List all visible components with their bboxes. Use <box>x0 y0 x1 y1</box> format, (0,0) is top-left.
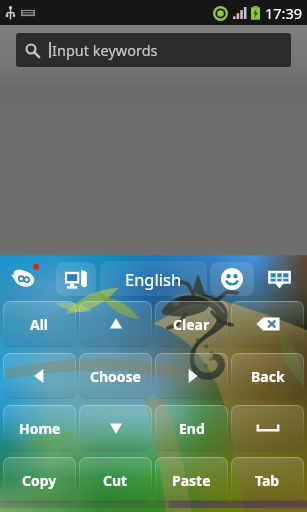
staticText: Paste <box>172 471 211 490</box>
button[interactable]: Keyboard <box>257 256 301 301</box>
staticText: Clear <box>173 315 210 334</box>
button[interactable]: Cut <box>79 457 152 503</box>
staticText: English <box>125 268 182 290</box>
staticText: Tab <box>255 471 280 490</box>
button[interactable]: del <box>231 301 304 347</box>
button[interactable]: down <box>79 405 152 451</box>
staticText: Input keywords <box>52 40 158 60</box>
button[interactable]: Input keywords <box>16 33 291 67</box>
staticText: Home <box>19 419 61 438</box>
button[interactable]: End <box>155 405 228 451</box>
button[interactable]: left <box>3 353 76 399</box>
button[interactable]: space <box>231 405 304 451</box>
staticText: Back <box>251 367 285 386</box>
button[interactable]: All <box>3 301 76 347</box>
button[interactable]: up <box>79 301 152 347</box>
button[interactable]: Back <box>231 353 304 399</box>
staticText: Copy <box>22 471 57 490</box>
staticText: Choose <box>90 367 141 386</box>
button[interactable]: Copy <box>3 457 76 503</box>
staticText: Cut <box>103 471 128 490</box>
button[interactable]: Emoji <box>207 256 257 301</box>
button[interactable]: Tab <box>231 457 304 503</box>
staticText: All <box>30 315 49 334</box>
staticText: 17:39 <box>265 3 303 23</box>
button[interactable]: Theme <box>52 256 100 301</box>
staticText: End <box>179 419 205 438</box>
button[interactable]: English <box>100 261 207 296</box>
button[interactable]: Clear <box>155 301 228 347</box>
button[interactable]: Home <box>3 405 76 451</box>
button[interactable]: Choose <box>79 353 152 399</box>
button[interactable]: Settings <box>0 256 52 301</box>
button[interactable]: right <box>155 353 228 399</box>
button[interactable]: Paste <box>155 457 228 503</box>
